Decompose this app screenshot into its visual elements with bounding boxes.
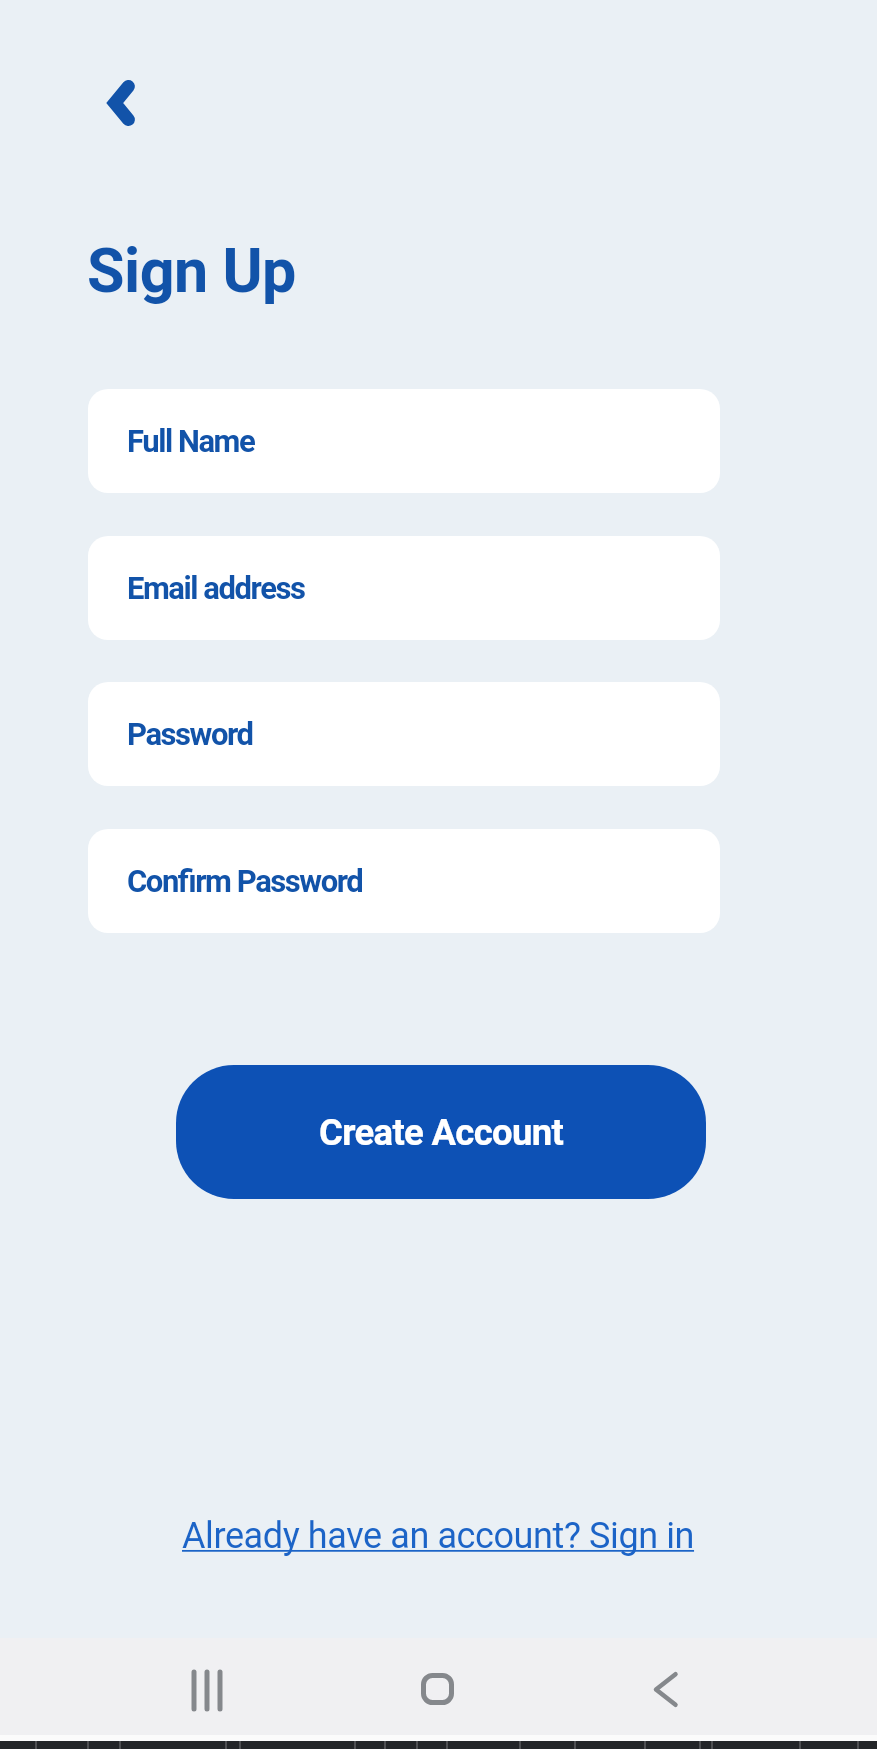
button[interactable] [92,72,152,132]
button[interactable]: Password [88,682,720,786]
button[interactable] [177,1654,237,1714]
button[interactable]: Confirm Password [88,829,720,933]
staticText: Full Name [127,423,255,459]
button[interactable]: Create Account [176,1065,706,1199]
button[interactable]: Full Name [88,389,720,493]
staticText: Password [127,716,253,752]
button[interactable]: Email address [88,536,720,640]
button[interactable] [407,1654,467,1714]
staticText: Sign Up [87,235,296,306]
staticText: Email address [127,570,305,606]
button[interactable] [637,1654,697,1714]
staticText: Create Account [319,1111,564,1154]
button[interactable]: Already have an account? Sign in [0,1508,877,1564]
staticText: Already have an account? Sign in [182,1515,695,1557]
staticText: Confirm Password [127,863,363,899]
